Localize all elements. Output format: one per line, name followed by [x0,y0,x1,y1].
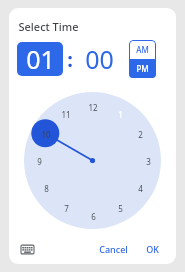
button[interactable]: 3 [138,151,158,171]
button[interactable]: 8 [36,178,56,198]
button[interactable]: 9 [29,151,49,171]
staticText: 11 [61,109,71,120]
staticText: 2 [138,129,143,140]
button[interactable]: 7 [56,198,76,218]
button[interactable]: Cancel [94,239,133,259]
button[interactable]: 11 [56,104,76,124]
staticText: Cancel [99,243,128,255]
staticText: 4 [138,183,143,194]
button[interactable]: 01 [17,42,63,76]
button[interactable]: 10 [36,124,56,144]
staticText: OK [146,243,159,255]
staticText: 10 [41,129,51,140]
staticText: 01 [26,42,55,76]
button[interactable]: 5 [110,198,130,218]
staticText: 8 [44,183,49,194]
staticText: 3 [146,156,151,167]
staticText: 6 [91,211,96,222]
button[interactable]: PM [129,59,156,78]
staticText: 5 [118,203,123,214]
staticText: : [67,46,73,73]
staticText: PM [136,63,149,74]
button[interactable]: 6 [83,206,103,226]
button[interactable]: AM [129,40,156,59]
button[interactable]: OK [141,239,164,259]
staticText: AM [136,44,149,55]
button[interactable]: 4 [130,178,150,198]
button[interactable]: 2 [130,124,150,144]
button[interactable]: 00 [76,42,122,76]
staticText: 1 [118,109,123,120]
staticText: 12 [88,102,98,113]
staticText: Select Time [18,19,79,34]
button[interactable]: 1 [110,104,130,124]
staticText: 7 [64,203,69,214]
staticText: 00 [85,42,114,76]
button[interactable]: Switch to text input [17,239,37,259]
staticText: 9 [37,156,42,167]
button[interactable]: 12 [83,97,103,117]
